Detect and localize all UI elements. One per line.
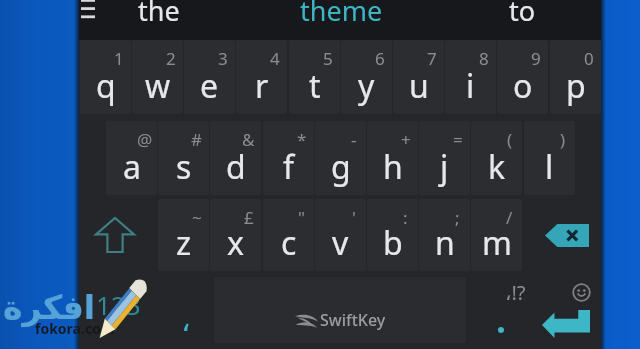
button[interactable]: to — [443, 0, 601, 40]
staticText: m — [482, 221, 512, 265]
staticText: 6 — [375, 47, 385, 70]
staticText: v — [332, 221, 349, 265]
staticText: ~ — [192, 206, 202, 229]
staticText: to — [509, 0, 536, 29]
staticText: e — [200, 64, 219, 108]
button[interactable]: Emoji — [572, 283, 591, 302]
staticText: - — [351, 128, 357, 151]
staticText: d — [226, 145, 246, 189]
staticText: l — [545, 145, 554, 189]
staticText: ،!? — [505, 279, 526, 306]
staticText: & — [242, 128, 255, 151]
staticText: افكرة — [3, 288, 96, 326]
staticText: 0 — [584, 47, 594, 70]
button[interactable]: 0 — [550, 40, 601, 114]
button[interactable]: 6 — [341, 40, 392, 114]
button[interactable]: + — [367, 121, 418, 195]
button[interactable]: & — [210, 121, 261, 195]
staticText: # — [191, 128, 202, 151]
button[interactable]: theme — [250, 0, 432, 40]
staticText: / — [506, 206, 513, 229]
staticText: 2 — [166, 47, 176, 70]
staticText: y — [358, 64, 375, 108]
button[interactable]: - — [315, 121, 366, 195]
staticText: + — [401, 128, 411, 151]
staticText: * — [297, 128, 307, 151]
button[interactable]: @ — [106, 121, 157, 195]
staticText: h — [383, 145, 403, 189]
staticText: 4 — [270, 47, 280, 70]
button[interactable]: 2 — [132, 40, 183, 114]
button[interactable]: £ — [210, 199, 261, 271]
button[interactable]: ' — [315, 199, 366, 271]
staticText: ) — [560, 128, 566, 151]
button[interactable]: the — [68, 0, 250, 40]
button[interactable]: 9 — [497, 40, 548, 114]
staticText: x — [227, 221, 244, 265]
button[interactable]: 7 — [393, 40, 444, 114]
staticText: theme — [300, 0, 383, 29]
staticText: 9 — [531, 47, 541, 70]
button[interactable]: Shift — [79, 199, 157, 271]
staticText: z — [176, 221, 192, 265]
button[interactable]: = — [419, 121, 470, 195]
staticText: u — [409, 64, 429, 108]
staticText: ، — [181, 303, 191, 338]
staticText: b — [383, 221, 403, 265]
staticText: the — [138, 0, 180, 29]
staticText: q — [96, 64, 116, 108]
staticText: j — [440, 145, 449, 189]
staticText: 3 — [218, 47, 228, 70]
staticText: o — [513, 64, 533, 108]
button[interactable]: * — [263, 121, 314, 195]
button[interactable]: 1 — [80, 40, 131, 114]
staticText: n — [435, 221, 455, 265]
staticText: c — [281, 221, 297, 265]
staticText: 7 — [427, 47, 437, 70]
staticText: = — [453, 128, 463, 151]
button[interactable]: 4 — [236, 40, 287, 114]
staticText: w — [145, 64, 171, 108]
button[interactable]: 3 — [184, 40, 235, 114]
staticText: k — [488, 145, 506, 189]
button[interactable]: 8 — [445, 40, 496, 114]
button[interactable]: " — [263, 199, 314, 271]
staticText: i — [466, 64, 475, 108]
button[interactable]: Menu — [80, 0, 100, 21]
staticText: : — [403, 206, 408, 229]
button[interactable]: 123 — [79, 272, 157, 349]
staticText: 123 — [96, 287, 141, 322]
staticText: t — [309, 64, 321, 108]
staticText: £ — [244, 206, 254, 229]
staticText: s — [176, 145, 192, 189]
button[interactable]: # — [158, 121, 209, 195]
button[interactable]: ( — [471, 121, 522, 195]
staticText: 5 — [323, 47, 333, 70]
staticText: r — [255, 64, 269, 108]
staticText: fokora.com — [35, 319, 115, 338]
staticText: g — [331, 145, 351, 189]
staticText: SwiftKey — [320, 309, 386, 331]
staticText: ( — [507, 128, 513, 151]
staticText: p — [566, 64, 586, 108]
staticText: a — [123, 145, 141, 189]
button[interactable]: ; — [419, 199, 470, 271]
staticText: @ — [137, 128, 153, 151]
button[interactable]: Enter — [542, 310, 590, 338]
button[interactable]: ، — [157, 272, 214, 349]
button[interactable]: 5 — [289, 40, 340, 114]
staticText: ' — [352, 206, 356, 229]
staticText: " — [298, 206, 305, 229]
button[interactable]: ~ — [158, 199, 209, 271]
button[interactable]: Backspace — [523, 199, 601, 271]
button[interactable]: : — [367, 199, 418, 271]
staticText: 1 — [114, 47, 124, 70]
staticText: f — [283, 145, 295, 189]
button[interactable]: ) — [524, 121, 575, 195]
staticText: ; — [455, 206, 460, 229]
button[interactable]: ،!? — [466, 272, 540, 349]
button[interactable]: Space — [214, 277, 466, 343]
staticText: 8 — [479, 47, 489, 70]
button[interactable]: / — [471, 199, 522, 271]
